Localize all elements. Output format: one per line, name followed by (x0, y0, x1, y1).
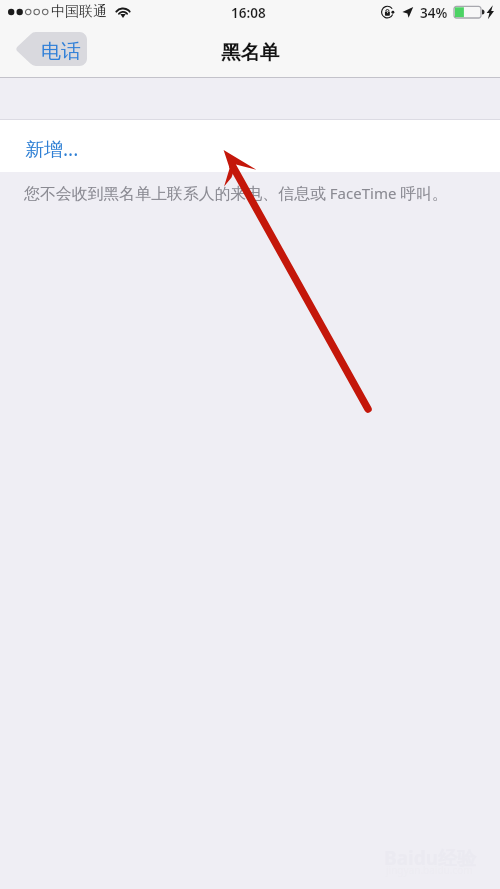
button[interactable]: 返回 电话 (15, 32, 87, 66)
staticText: 黑名单 (221, 40, 280, 65)
staticText: 新增... (25, 136, 79, 162)
button[interactable]: 新增... (0, 120, 500, 172)
staticText: 中国联通 (51, 3, 107, 21)
staticText: 34% (420, 4, 448, 22)
staticText: 您不会收到黑名单上联系人的来电、信息或 FaceTime 呼叫。 (24, 183, 448, 204)
staticText: 电话 (41, 39, 81, 64)
staticText: 16:08 (231, 4, 266, 22)
